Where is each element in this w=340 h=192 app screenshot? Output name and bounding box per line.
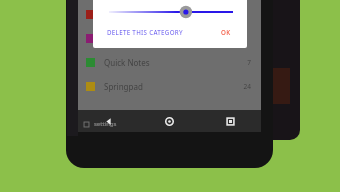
button[interactable]: OK: [217, 25, 235, 39]
button[interactable]: Back: [78, 110, 139, 132]
staticText: settings: [94, 120, 117, 128]
button[interactable]: DELETE THIS CATEGORY: [105, 25, 185, 39]
button[interactable]: [78, 26, 261, 50]
button[interactable]: [78, 0, 261, 4]
staticText: 24: [243, 82, 251, 91]
button[interactable]: Recents: [200, 110, 261, 132]
staticText: 7: [247, 58, 251, 67]
button[interactable]: Home: [139, 110, 200, 132]
staticText: Springpad: [104, 81, 143, 92]
staticText: OK: [221, 28, 231, 36]
button[interactable]: Color slider: [93, 5, 247, 19]
staticText: DELETE THIS CATEGORY: [107, 28, 183, 36]
button[interactable]: Springpad: [78, 74, 261, 98]
button[interactable]: [78, 2, 261, 26]
button[interactable]: Quick Notes: [78, 50, 261, 74]
staticText: Quick Notes: [104, 57, 150, 68]
